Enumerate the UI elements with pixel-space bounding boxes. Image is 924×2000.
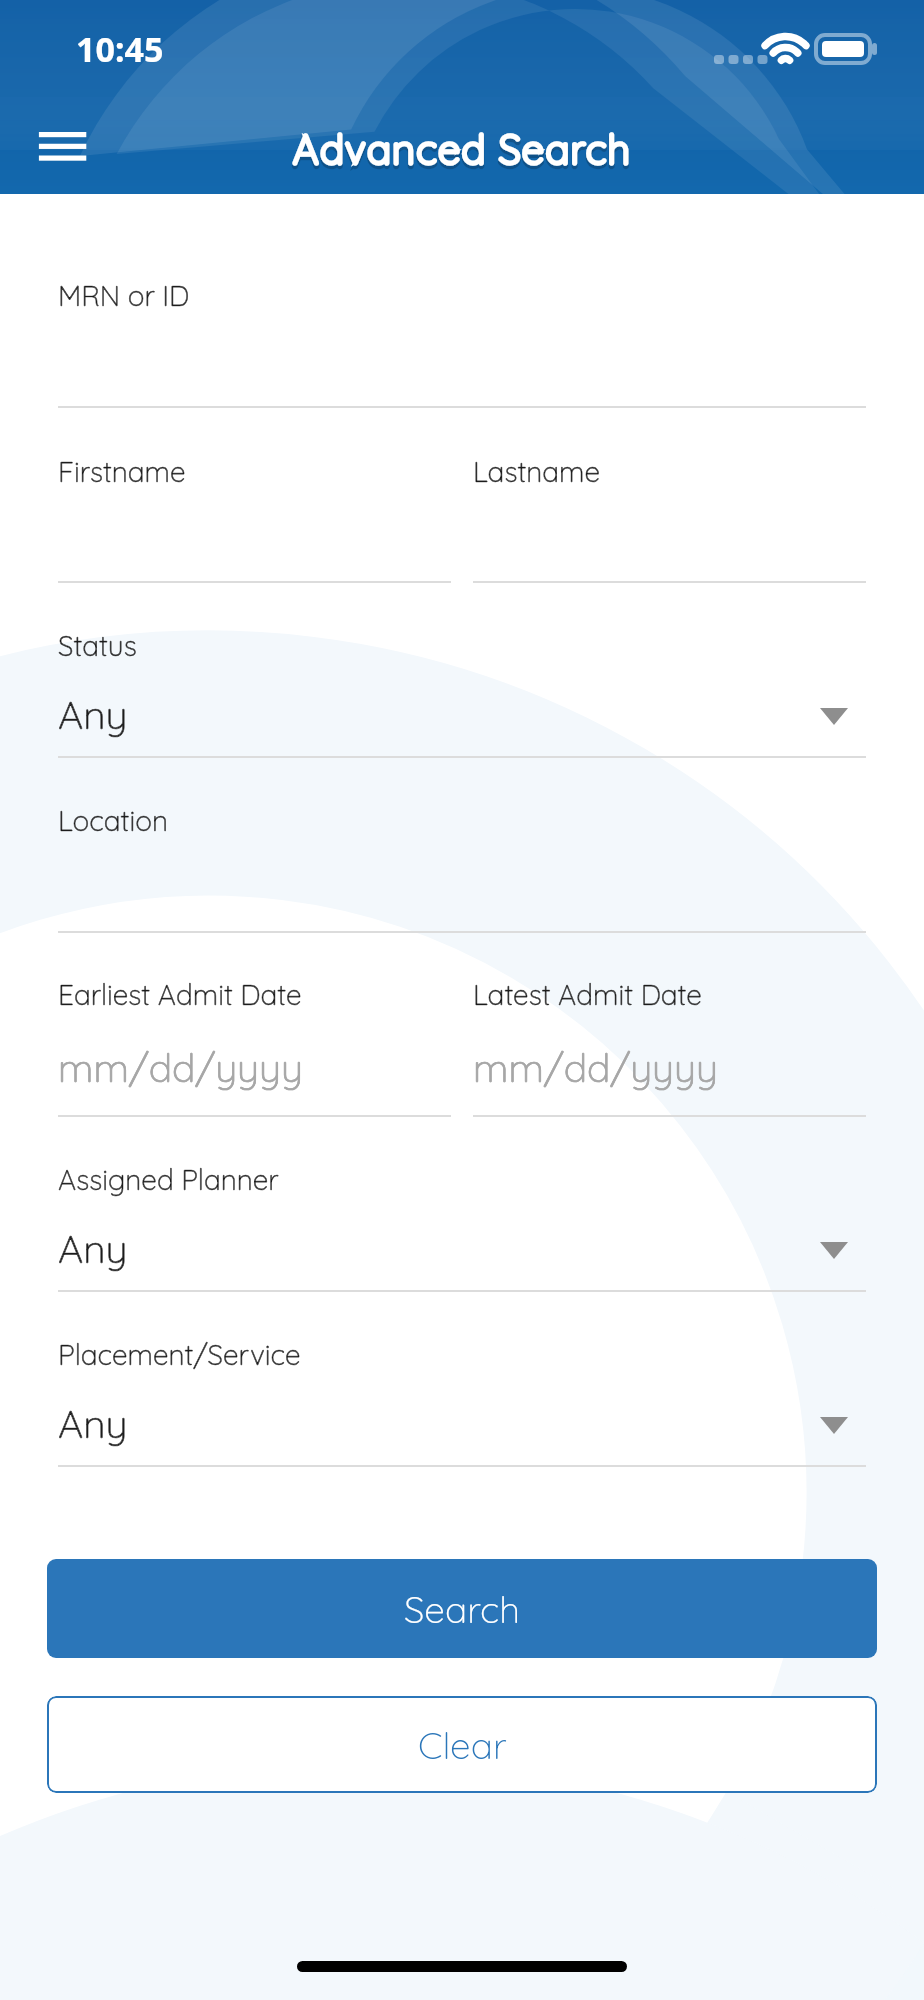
staticText: Earliest Admit Date: [58, 977, 302, 1012]
staticText: Placement/Service: [58, 1337, 301, 1372]
staticText: Latest Admit Date: [473, 977, 702, 1012]
staticText: Latest Admit Date: [473, 977, 702, 1012]
button[interactable]: Open navigation menu: [24, 113, 96, 185]
staticText: Lastname: [473, 454, 601, 489]
staticText: Assigned Planner: [58, 1162, 279, 1197]
staticText: Lastname: [473, 454, 601, 489]
button[interactable]: MRN or ID: [58, 285, 866, 418]
button[interactable]: Clear: [47, 1696, 877, 1793]
button[interactable]: Lastname: [473, 461, 866, 593]
staticText: Firstname: [58, 454, 186, 489]
staticText: Advanced Search: [0, 124, 924, 174]
button[interactable]: Firstname: [58, 461, 451, 593]
button[interactable]: Location: [58, 810, 866, 943]
staticText: 10:45: [76, 26, 164, 72]
staticText: Any: [58, 1224, 128, 1273]
staticText: Location: [58, 803, 168, 838]
staticText: Any: [58, 1224, 128, 1273]
staticText: mm/dd/yyyy: [473, 1043, 718, 1092]
staticText: MRN or ID: [58, 278, 190, 313]
staticText: Status: [58, 628, 137, 663]
staticText: Advanced Search: [0, 124, 924, 174]
staticText: Location: [58, 803, 168, 838]
button[interactable]: Search: [47, 1559, 877, 1658]
staticText: Status: [58, 628, 137, 663]
staticText: Assigned Planner: [58, 1162, 279, 1197]
staticText: Firstname: [58, 454, 186, 489]
staticText: Any: [58, 1399, 128, 1448]
button[interactable]: Earliest Admit Date: [58, 984, 451, 1127]
button[interactable]: Placement/Service: [58, 1344, 866, 1477]
staticText: Any: [58, 690, 128, 739]
staticText: Search: [404, 1586, 520, 1632]
staticText: mm/dd/yyyy: [473, 1043, 718, 1092]
staticText: Placement/Service: [58, 1337, 301, 1372]
staticText: Advanced Search: [0, 127, 924, 177]
staticText: Earliest Admit Date: [58, 977, 302, 1012]
staticText: mm/dd/yyyy: [58, 1043, 303, 1092]
button[interactable]: Latest Admit Date: [473, 984, 866, 1127]
staticText: Any: [58, 690, 128, 739]
staticText: Any: [58, 1399, 128, 1448]
staticText: Clear: [418, 1722, 507, 1768]
staticText: MRN or ID: [58, 278, 190, 313]
staticText: mm/dd/yyyy: [58, 1043, 303, 1092]
button[interactable]: Assigned Planner: [58, 1169, 866, 1302]
button[interactable]: Status: [58, 635, 866, 768]
